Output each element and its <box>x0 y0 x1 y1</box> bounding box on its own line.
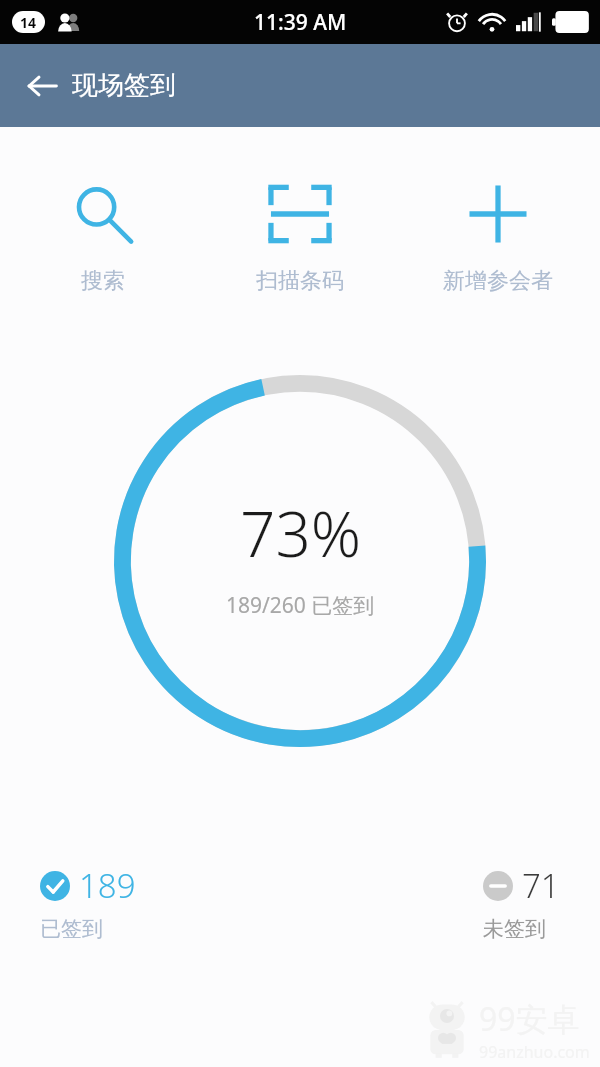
staticText: 11:39 AM <box>254 8 347 37</box>
staticText: 未签到 <box>483 916 546 942</box>
staticText: 搜索 <box>81 267 125 295</box>
staticText: 新增参会者 <box>443 267 553 295</box>
staticText: 189 <box>79 863 136 908</box>
button[interactable]: 189 <box>36 859 140 946</box>
staticText: 扫描条码 <box>256 267 344 295</box>
staticText: 14 <box>20 13 37 32</box>
button[interactable]: Back <box>14 58 70 114</box>
staticText: 73% <box>240 491 362 575</box>
staticText: 99anzhuo.com <box>479 1041 590 1063</box>
button[interactable]: 71 <box>479 859 564 946</box>
staticText: 现场签到 <box>72 69 176 102</box>
button[interactable]: Search <box>8 173 198 299</box>
button[interactable]: Add attendee <box>403 173 593 299</box>
staticText: 99安卓 <box>479 997 580 1041</box>
staticText: 189/260 已签到 <box>226 591 375 620</box>
staticText: 已签到 <box>40 916 103 942</box>
staticText: 71 <box>522 863 560 908</box>
button[interactable]: Scan barcode <box>205 173 395 299</box>
